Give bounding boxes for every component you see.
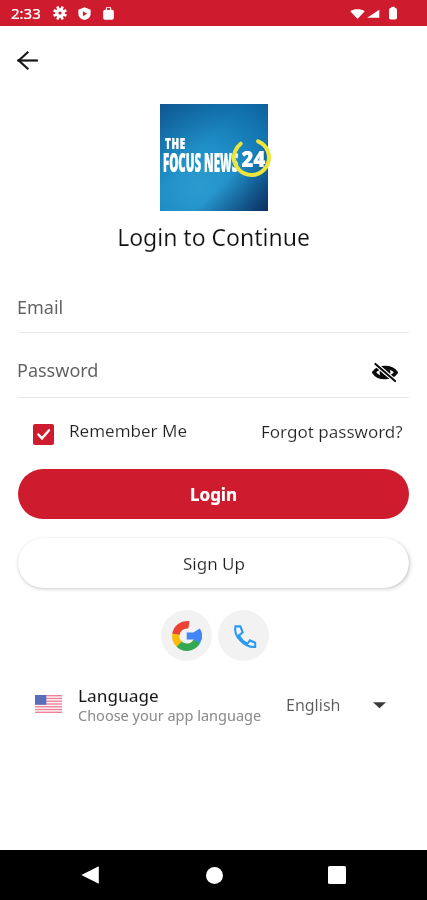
staticText: Email — [17, 295, 64, 320]
button[interactable]: Sign Up — [18, 538, 409, 588]
button[interactable]: Login — [18, 469, 409, 519]
staticText: FOCUS NEWS — [163, 143, 239, 180]
staticText: Login — [190, 483, 238, 506]
button[interactable]: Sign in with phone — [218, 610, 269, 661]
button[interactable]: Sign in with Google — [161, 610, 212, 661]
button[interactable] — [0, 681, 427, 729]
button[interactable]: Forgot password? — [261, 420, 403, 443]
staticText: Password — [17, 358, 99, 383]
staticText: Language — [78, 684, 159, 707]
button[interactable]: Show password — [368, 355, 402, 389]
button[interactable]: Remember Me — [33, 415, 188, 445]
button[interactable]: Home — [190, 851, 238, 899]
staticText: Login to Continue — [0, 221, 427, 252]
staticText: 2:33 — [11, 3, 41, 23]
staticText: THE — [165, 133, 186, 153]
staticText: Choose your app language — [78, 705, 262, 725]
staticText: Sign Up — [183, 552, 245, 575]
staticText: English — [286, 694, 341, 716]
button[interactable]: Recent apps — [313, 851, 361, 899]
staticText: Forgot password? — [261, 420, 403, 443]
button[interactable]: Back — [3, 36, 51, 84]
button[interactable]: Back — [66, 851, 114, 899]
staticText: 24 — [242, 142, 265, 173]
staticText: Remember Me — [69, 419, 188, 442]
